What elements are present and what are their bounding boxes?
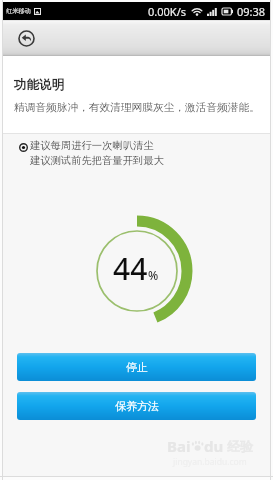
button[interactable]: 返回 [11,23,41,53]
staticText: % [148,267,159,283]
staticText: 停止 [126,360,148,374]
button[interactable]: 保养方法 [17,392,256,420]
staticText: du [204,436,224,456]
staticText: 建议每周进行一次喇叭清尘 [30,139,154,152]
staticText: 经验 [227,438,253,454]
staticText: 09:38 [237,4,266,19]
button[interactable]: 停止 [17,353,256,381]
staticText: 0.00K/s [148,4,186,19]
staticText: 44 [113,248,148,289]
staticText: 功能说明 [14,77,64,93]
staticText: 建议测试前先把音量开到最大 [30,154,164,167]
staticText: 保养方法 [115,399,159,413]
staticText: Bai [167,436,191,456]
staticText: 精调音频脉冲，有效清理网膜灰尘，激活音频潜能。 [14,101,260,114]
staticText: 红米移动 [6,7,31,15]
